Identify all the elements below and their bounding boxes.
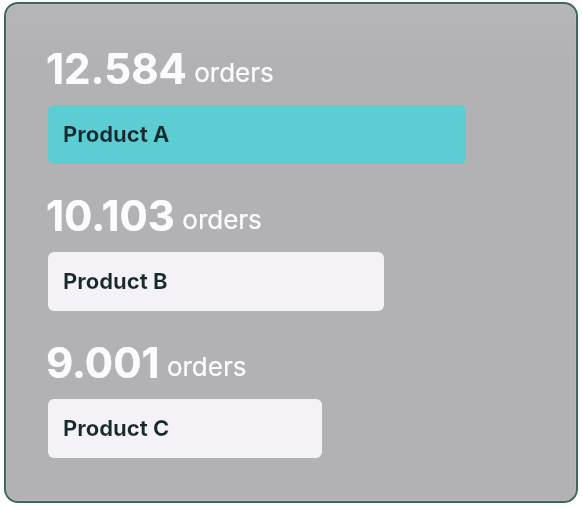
staticText: Product C xyxy=(63,415,170,442)
button[interactable]: Product A xyxy=(48,105,466,164)
staticText: Product A xyxy=(63,121,170,148)
staticText: 10.103 orders xyxy=(46,190,262,241)
staticText: 12.584 orders xyxy=(46,43,274,94)
button[interactable]: Product B xyxy=(48,252,384,311)
staticText: Product B xyxy=(63,268,168,295)
staticText: 9.001 orders xyxy=(46,337,247,388)
button[interactable]: Product C xyxy=(48,399,322,458)
